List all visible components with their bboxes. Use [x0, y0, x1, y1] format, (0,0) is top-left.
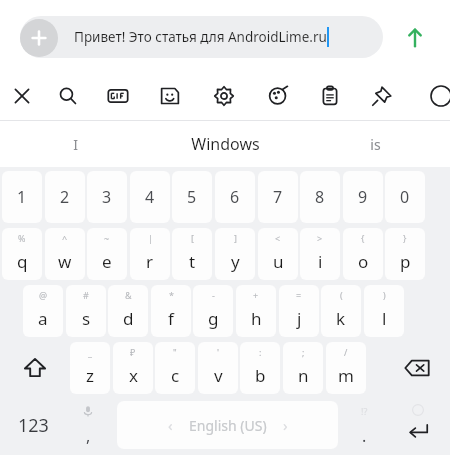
button[interactable]: Settings — [204, 76, 244, 116]
staticText: [ — [191, 232, 194, 244]
staticText: q — [17, 250, 28, 273]
button[interactable]: @ — [23, 285, 63, 337]
staticText: d — [123, 307, 134, 330]
button[interactable]: Period — [340, 399, 388, 451]
button[interactable]: Themes — [258, 76, 298, 116]
button[interactable]: 123 — [4, 399, 62, 451]
staticText: a — [38, 307, 48, 330]
staticText: o — [358, 250, 369, 273]
staticText: | — [148, 232, 153, 244]
button[interactable]: % — [2, 228, 42, 280]
staticText: 6 — [230, 186, 240, 208]
staticText: ^ — [62, 232, 68, 244]
button[interactable]: 6 — [215, 171, 255, 223]
button[interactable]: Send — [395, 18, 435, 58]
staticText: ~ — [104, 232, 110, 244]
staticText: Привет! Это статья для AndroidLime.ru — [74, 28, 327, 46]
staticText: x — [129, 364, 138, 387]
button[interactable]: " — [155, 342, 195, 394]
staticText: 9 — [358, 186, 368, 208]
button[interactable]: ] — [215, 228, 255, 280]
staticText: ' — [217, 346, 220, 358]
staticText: z — [86, 364, 94, 387]
staticText: p — [400, 250, 411, 273]
staticText: !? — [361, 405, 368, 417]
staticText: m — [338, 364, 354, 387]
staticText: ‹ — [168, 415, 173, 435]
staticText: 0 — [400, 186, 410, 208]
staticText: b — [255, 364, 266, 387]
staticText: › — [283, 415, 288, 435]
staticText: k — [336, 307, 346, 330]
button[interactable]: 1 — [2, 171, 42, 223]
staticText: + — [253, 289, 259, 301]
button[interactable]: is — [300, 121, 450, 167]
staticText: is — [370, 135, 381, 154]
button[interactable]: 5 — [172, 171, 212, 223]
button[interactable]: 0 — [385, 171, 425, 223]
button[interactable]: Add attachment — [20, 19, 58, 57]
button[interactable]: Search — [48, 76, 88, 116]
staticText: ( — [340, 289, 343, 301]
button[interactable]: & — [108, 285, 148, 337]
button[interactable]: GIF — [98, 76, 138, 116]
button[interactable]: Comma, voice input — [64, 399, 112, 451]
staticText: ] — [234, 232, 237, 244]
button[interactable]: _ — [70, 342, 110, 394]
button[interactable]: = — [279, 285, 319, 337]
button[interactable]: } — [385, 228, 425, 280]
staticText: h — [251, 307, 262, 330]
button[interactable]: ( — [321, 285, 361, 337]
button[interactable]: 7 — [258, 171, 298, 223]
button[interactable]: 3 — [87, 171, 127, 223]
button[interactable]: 2 — [45, 171, 85, 223]
button[interactable]: Shift — [8, 342, 62, 394]
button[interactable]: 8 — [300, 171, 340, 223]
button[interactable] — [20, 16, 383, 58]
button[interactable]: ~ — [87, 228, 127, 280]
staticText: g — [208, 307, 219, 330]
button[interactable]: | — [130, 228, 170, 280]
button[interactable]: > — [300, 228, 340, 280]
button[interactable]: Enter — [392, 399, 444, 451]
staticText: w — [58, 250, 72, 273]
button[interactable]: I — [0, 121, 150, 167]
button[interactable]: - — [193, 285, 233, 337]
staticText: # — [83, 289, 89, 301]
staticText: : — [259, 346, 262, 358]
button[interactable]: 4 — [130, 171, 170, 223]
button[interactable]: ₽ — [113, 342, 153, 394]
button[interactable]: ) — [364, 285, 404, 337]
staticText: > — [317, 232, 323, 244]
button[interactable]: ^ — [45, 228, 85, 280]
button[interactable]: # — [66, 285, 106, 337]
button[interactable]: Backspace — [390, 342, 444, 394]
staticText: < — [275, 232, 281, 244]
button[interactable]: / — [326, 342, 366, 394]
button[interactable]: Clipboard — [310, 76, 350, 116]
staticText: e — [102, 250, 112, 273]
button[interactable]: Windows — [150, 121, 300, 167]
staticText: @ — [39, 289, 48, 301]
staticText: u — [273, 250, 284, 273]
button[interactable]: Stickers — [150, 76, 190, 116]
button[interactable]: ' — [198, 342, 238, 394]
button[interactable]: Pin toolbar — [362, 76, 402, 116]
staticText: ) — [383, 289, 386, 301]
button[interactable]: : — [240, 342, 280, 394]
button[interactable]: { — [343, 228, 383, 280]
staticText: 1 — [17, 186, 27, 208]
staticText: { — [361, 232, 365, 244]
button[interactable]: + — [236, 285, 276, 337]
staticText: Windows — [191, 133, 260, 155]
button[interactable]: [ — [172, 228, 212, 280]
button[interactable]: ; — [283, 342, 323, 394]
button[interactable]: ‹ — [117, 401, 338, 449]
staticText: j — [297, 307, 302, 330]
staticText: & — [125, 289, 132, 301]
staticText: - — [212, 289, 215, 301]
button[interactable]: 9 — [343, 171, 383, 223]
button[interactable]: * — [151, 285, 191, 337]
button[interactable]: < — [258, 228, 298, 280]
button[interactable]: Close — [2, 76, 42, 116]
